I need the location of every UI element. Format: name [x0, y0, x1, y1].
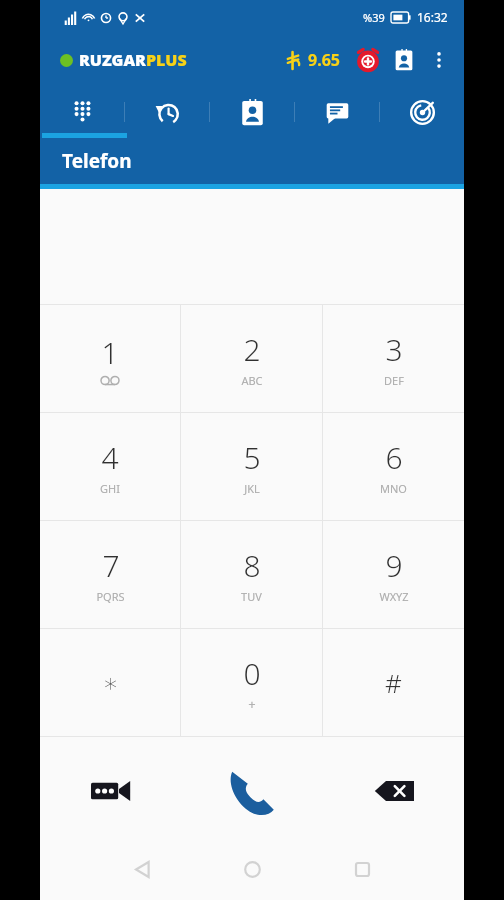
staticText: %39 [363, 10, 385, 25]
staticText: DEF [384, 373, 404, 388]
button[interactable]: Recents [340, 847, 384, 891]
button[interactable]: 6 [323, 413, 464, 520]
staticText: 1 [101, 332, 119, 373]
staticText: + [248, 695, 256, 713]
staticText: # [385, 665, 402, 700]
staticText: TUV [241, 589, 262, 604]
button[interactable]: More options [422, 43, 456, 77]
staticText: PQRS [96, 589, 125, 604]
button[interactable]: 5 [181, 413, 322, 520]
button[interactable]: 4 [40, 413, 180, 520]
staticText: 3 [385, 329, 403, 370]
staticText: MNO [380, 481, 407, 496]
button[interactable]: 9 [323, 521, 464, 628]
staticText: RUZGAR [79, 49, 146, 71]
button[interactable]: Contacts [386, 42, 422, 78]
button[interactable]: Dialpad [40, 86, 124, 138]
staticText: 2 [243, 329, 261, 370]
button[interactable]: Messages [295, 86, 379, 138]
staticText: ABC [241, 373, 263, 388]
staticText: PLUS [146, 49, 187, 71]
button[interactable]: 1 [40, 305, 180, 412]
button[interactable]: Back [120, 847, 164, 891]
button[interactable]: Assistant [380, 86, 464, 138]
staticText: 4 [101, 437, 119, 478]
button[interactable]: Home [230, 847, 274, 891]
button[interactable]: 0 [181, 629, 322, 736]
staticText: 9 [385, 545, 403, 586]
staticText: 0 [243, 653, 261, 694]
staticText: WXYZ [379, 589, 409, 604]
button[interactable]: Call history [125, 86, 209, 138]
button[interactable]: ∗ [40, 629, 180, 736]
button[interactable]: Backspace [323, 737, 464, 844]
button[interactable]: 8 [181, 521, 322, 628]
button[interactable]: Contacts [210, 86, 294, 138]
staticText: 7 [102, 545, 120, 586]
staticText: Telefon [62, 148, 132, 174]
staticText: ∗ [102, 668, 119, 698]
button[interactable]: 3 [323, 305, 464, 412]
staticText: JKL [244, 481, 260, 496]
button[interactable]: 7 [40, 521, 180, 628]
staticText: 5 [243, 437, 261, 478]
button[interactable]: # [323, 629, 464, 736]
button[interactable]: 2 [181, 305, 322, 412]
staticText: 16:32 [417, 9, 448, 25]
button[interactable]: Alarm [350, 42, 386, 78]
button[interactable]: Call [182, 737, 323, 844]
staticText: 6 [385, 437, 403, 478]
button[interactable]: Video call [40, 737, 182, 844]
staticText: 8 [243, 545, 261, 586]
staticText: GHI [100, 481, 120, 496]
staticText: 9.65 [308, 49, 340, 71]
